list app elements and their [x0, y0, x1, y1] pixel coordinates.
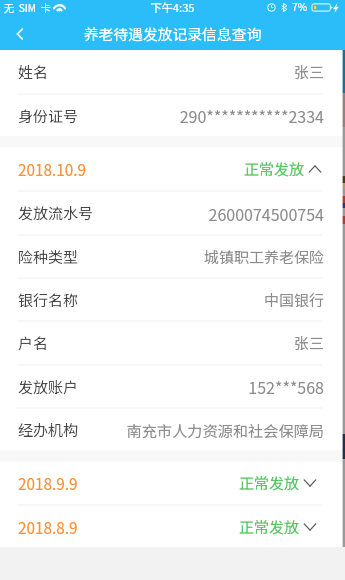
staticText: 152***568 [83, 375, 324, 398]
button[interactable]: 2018.10.9 [0, 147, 345, 190]
staticText: 经办机构 [18, 419, 79, 441]
button[interactable]: 2018.8.9 [0, 506, 345, 547]
button[interactable]: 身份证号 [0, 95, 345, 136]
button[interactable]: 户名 [0, 322, 345, 364]
staticText: 发放流水号 [18, 202, 94, 224]
staticText: 2018.8.9 [18, 516, 78, 538]
staticText: 下午4:35 [0, 0, 345, 15]
staticText: 290***********2334 [83, 104, 324, 127]
staticText: 中国银行 [83, 289, 324, 311]
button[interactable]: Back [0, 17, 40, 50]
staticText: 身份证号 [18, 105, 79, 127]
staticText: 正常发放 [239, 516, 300, 538]
staticText: 险种类型 [18, 246, 79, 268]
staticText: 户名 [18, 332, 49, 354]
staticText: 养老待遇发放记录信息查询 [0, 23, 345, 44]
staticText: 2600074500754 [98, 202, 324, 225]
staticText: 姓名 [18, 61, 49, 83]
staticText: 银行名称 [18, 289, 79, 311]
staticText: 无 SIM 卡 [4, 0, 51, 15]
staticText: 正常发放 [239, 472, 300, 494]
button[interactable]: 险种类型 [0, 236, 345, 277]
button[interactable]: 发放流水号 [0, 192, 345, 234]
button[interactable]: 2018.9.9 [0, 462, 345, 504]
staticText: 张三 [53, 61, 324, 83]
staticText: 2018.9.9 [18, 472, 78, 494]
button[interactable]: 银行名称 [0, 279, 345, 320]
staticText: 正常发放 [244, 158, 305, 180]
button[interactable]: 发放账户 [0, 366, 345, 407]
staticText: 城镇职工养老保险 [83, 246, 324, 268]
staticText: 7% [292, 0, 308, 14]
button[interactable]: 经办机构 [0, 409, 345, 450]
staticText: 2018.10.9 [18, 158, 86, 180]
staticText: 张三 [53, 332, 324, 354]
staticText: 南充市人力资源和社会保障局 [83, 419, 324, 441]
staticText: 发放账户 [18, 376, 79, 398]
button[interactable]: 姓名 [0, 50, 345, 93]
